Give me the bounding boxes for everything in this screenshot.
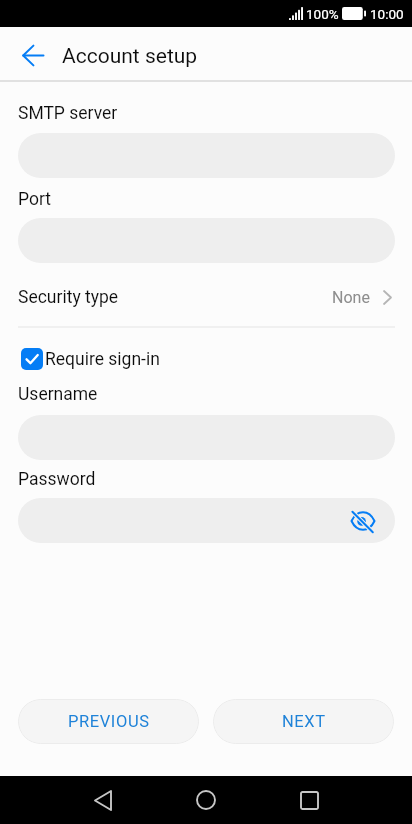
- staticText: Password: [18, 469, 96, 490]
- staticText: Account setup: [62, 44, 198, 69]
- button[interactable]: Show password: [345, 503, 381, 539]
- staticText: None: [332, 288, 370, 307]
- button[interactable]: Home: [182, 776, 230, 824]
- button[interactable]: Require sign-in: [15, 348, 160, 370]
- staticText: Security type: [18, 287, 119, 308]
- button[interactable]: Back: [11, 33, 55, 77]
- staticText: Port: [18, 189, 51, 210]
- staticText: 100%: [306, 6, 339, 22]
- staticText: PREVIOUS: [68, 712, 150, 731]
- button[interactable]: NEXT: [213, 699, 394, 744]
- staticText: Username: [18, 384, 98, 405]
- button[interactable]: Recent apps: [285, 776, 333, 824]
- button[interactable]: Show password: [18, 498, 395, 543]
- staticText: SMTP server: [18, 103, 118, 124]
- button[interactable]: Back: [79, 776, 127, 824]
- button[interactable]: Security type: [0, 280, 412, 315]
- staticText: Require sign-in: [45, 349, 160, 370]
- button[interactable]: PREVIOUS: [18, 699, 199, 744]
- staticText: NEXT: [282, 712, 326, 731]
- staticText: 10:00: [370, 6, 404, 22]
